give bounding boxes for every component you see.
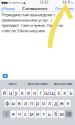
staticText: Назад — [3, 6, 14, 11]
staticText: м — [29, 110, 33, 118]
staticText: MTS RUS — [11, 1, 22, 4]
staticText: ъ — [69, 89, 72, 96]
staticText: к — [21, 89, 24, 96]
staticText: Периодический — [26, 82, 48, 86]
button[interactable]: Периодически — [50, 80, 75, 88]
button[interactable]: з — [56, 89, 61, 96]
staticText: н — [33, 89, 36, 96]
button[interactable]: н — [32, 89, 37, 96]
button[interactable]: в — [17, 100, 22, 107]
button[interactable]: щ — [50, 89, 55, 96]
staticText: ы — [11, 100, 15, 107]
staticText: ▲ — [22, 1, 25, 4]
staticText: ю — [60, 110, 64, 118]
staticText: ●●●○○ — [1, 1, 11, 4]
button[interactable]: ⌫ — [65, 110, 72, 118]
staticText: г — [39, 89, 41, 96]
staticText: э — [66, 100, 69, 107]
button[interactable]: м — [29, 110, 34, 118]
button[interactable]: ж — [59, 100, 64, 107]
button[interactable]: т — [41, 110, 46, 118]
button[interactable]: ы — [11, 100, 16, 107]
staticText: ц — [9, 89, 12, 96]
button[interactable]: Периодический — [25, 80, 50, 88]
staticText: х — [63, 89, 66, 96]
staticText: з — [57, 89, 60, 96]
staticText: л — [48, 100, 51, 107]
button[interactable]: к — [20, 89, 25, 96]
staticText: с — [24, 110, 27, 118]
button[interactable]: й — [1, 89, 7, 96]
staticText: е — [27, 89, 30, 96]
staticText: ф — [5, 100, 9, 107]
button[interactable]: п — [29, 100, 34, 107]
button[interactable]: о — [41, 100, 46, 107]
staticText: у — [15, 89, 18, 96]
staticText: ⇧ — [5, 112, 8, 116]
staticText: д — [54, 100, 57, 107]
staticText: ⌫ — [66, 112, 72, 116]
button[interactable]: с — [23, 110, 28, 118]
button[interactable]: а — [23, 100, 28, 107]
staticText: ж — [60, 100, 64, 107]
button[interactable]: у — [14, 89, 19, 96]
staticText: “Перио” — [7, 82, 18, 86]
staticText: 64 % — [63, 1, 70, 4]
staticText: 14:26 — [39, 1, 48, 4]
button[interactable]: р — [35, 100, 40, 107]
staticText: й — [3, 89, 6, 96]
staticText: б — [54, 110, 57, 118]
button[interactable]: д — [53, 100, 58, 107]
staticText: р — [36, 100, 39, 107]
button[interactable]: г — [38, 89, 43, 96]
button[interactable]: б — [53, 110, 58, 118]
staticText: Периодический прохождение с правилами ма… — [1, 12, 63, 33]
button[interactable]: ь — [47, 110, 52, 118]
staticText: Соглашение — [22, 6, 47, 11]
staticText: ш — [44, 89, 49, 96]
staticText: ▭ — [70, 1, 74, 4]
button[interactable]: ⇧ — [3, 110, 10, 118]
button[interactable]: э — [65, 100, 70, 107]
staticText: о — [42, 100, 45, 107]
staticText: ч — [18, 110, 21, 118]
button[interactable]: ф — [5, 100, 10, 107]
button[interactable]: ю — [59, 110, 64, 118]
staticText: а — [24, 100, 27, 107]
staticText: п — [30, 100, 33, 107]
staticText: Периодически — [52, 82, 72, 86]
staticText: я — [12, 110, 15, 118]
staticText: щ — [50, 89, 55, 96]
button[interactable]: х — [62, 89, 67, 96]
button[interactable]: ‹ — [0, 5, 15, 12]
staticText: и — [36, 110, 39, 118]
button[interactable]: Отправить — [54, 5, 75, 12]
button[interactable]: ш — [44, 89, 49, 96]
button[interactable]: л — [47, 100, 52, 107]
staticText: в — [18, 100, 21, 107]
staticText: т — [42, 110, 44, 118]
button[interactable]: ц — [8, 89, 13, 96]
staticText: ‹ — [1, 4, 3, 13]
button[interactable]: ъ — [68, 89, 73, 96]
button[interactable]: ч — [17, 110, 22, 118]
button[interactable]: е — [26, 89, 31, 96]
button[interactable]: “Перио” — [0, 80, 25, 88]
staticText: ь — [48, 110, 51, 118]
staticText: Отправить — [55, 6, 74, 11]
button[interactable]: и — [35, 110, 40, 118]
button[interactable]: Attach photo — [1, 73, 9, 79]
button[interactable]: я — [11, 110, 16, 118]
